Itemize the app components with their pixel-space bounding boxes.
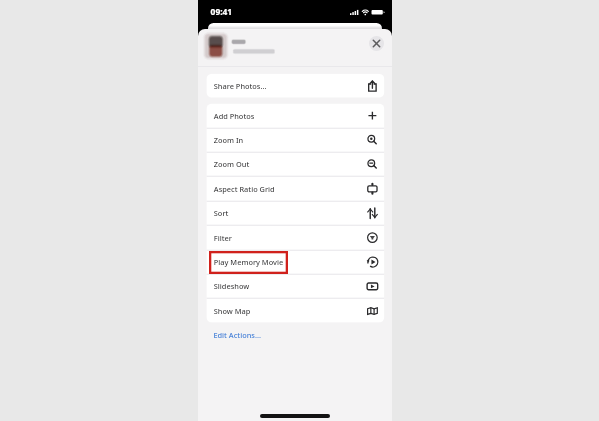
staticText: Zoom Out — [214, 159, 250, 169]
staticText: 09:41 — [211, 6, 233, 17]
button[interactable]: Aspect Ratio Grid — [206, 177, 384, 201]
staticText: Slideshow — [214, 281, 250, 291]
staticText: Zoom In — [214, 135, 244, 145]
button[interactable]: Close — [369, 36, 384, 51]
staticText: Show Map — [214, 306, 251, 316]
button[interactable]: Zoom In — [206, 128, 384, 152]
button[interactable]: Edit Actions... — [206, 324, 384, 346]
staticText: Filter — [214, 233, 233, 243]
staticText: Play Memory Movie — [214, 257, 284, 267]
staticText: Edit Actions... — [213, 330, 261, 340]
button[interactable]: Play Memory Movie — [206, 250, 384, 274]
button[interactable]: Add Photos — [206, 104, 384, 128]
button[interactable]: Share Photos... — [206, 74, 384, 98]
staticText: Aspect Ratio Grid — [214, 184, 275, 194]
staticText: Add Photos — [214, 111, 255, 121]
button[interactable]: Zoom Out — [206, 152, 384, 176]
button[interactable]: Filter — [206, 226, 384, 250]
button[interactable]: Slideshow — [206, 274, 384, 298]
staticText: Sort — [214, 208, 229, 218]
button[interactable]: Show Map — [206, 299, 384, 323]
staticText: Share Photos... — [214, 81, 267, 91]
button[interactable]: Sort — [206, 201, 384, 225]
